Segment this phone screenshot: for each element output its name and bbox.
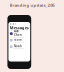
staticText: Team — [14, 38, 22, 41]
button[interactable]: Team — [8, 37, 30, 43]
button[interactable]: Noah — [8, 43, 30, 50]
button[interactable]: Ava Chen — [8, 30, 30, 37]
staticText: Noah — [14, 44, 22, 48]
staticText: 9:41 — [10, 22, 17, 25]
staticText: Ava Chen — [14, 30, 22, 37]
staticText: Messages — [10, 25, 29, 30]
staticText: Branding update, 2:05 — [9, 3, 54, 8]
